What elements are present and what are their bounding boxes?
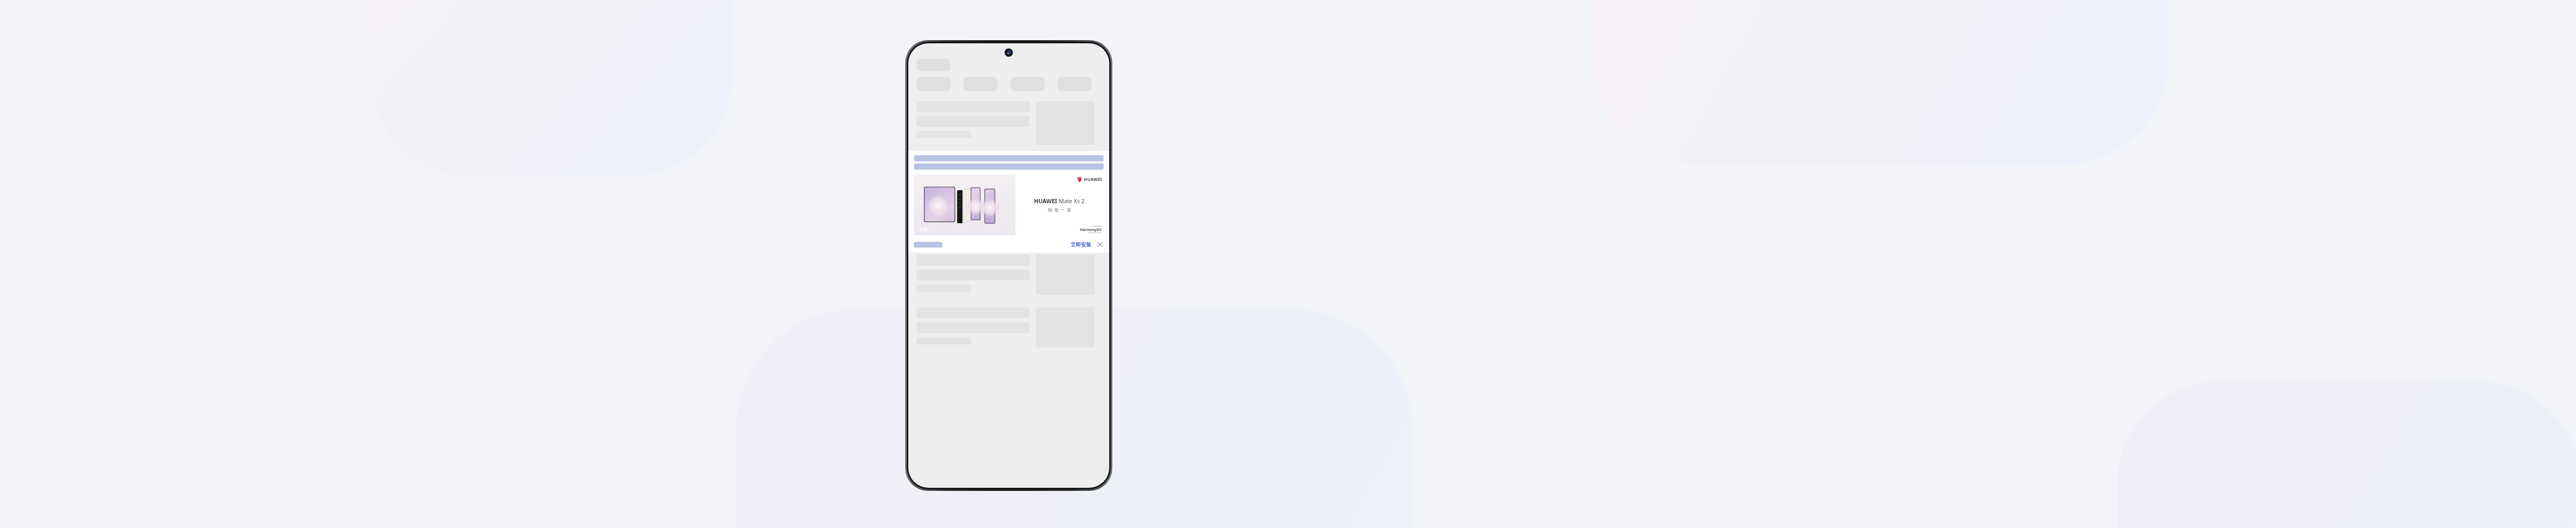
staticText: 广告 bbox=[920, 227, 927, 232]
staticText: HUAWEI bbox=[1084, 176, 1103, 182]
button[interactable]: 立即安装 bbox=[1069, 240, 1093, 249]
staticText: HarmonyOS bbox=[1080, 227, 1101, 233]
staticText: HUAWEI bbox=[1034, 197, 1057, 205]
button[interactable]: 广告 bbox=[908, 151, 1109, 253]
staticText: 独 领 一 面 bbox=[1048, 207, 1071, 212]
button[interactable]: Close ad bbox=[1096, 241, 1104, 248]
staticText: 立即安装 bbox=[1071, 241, 1091, 248]
staticText: Mate Xs 2 bbox=[1059, 197, 1085, 205]
staticText: Powered by bbox=[1093, 225, 1101, 227]
